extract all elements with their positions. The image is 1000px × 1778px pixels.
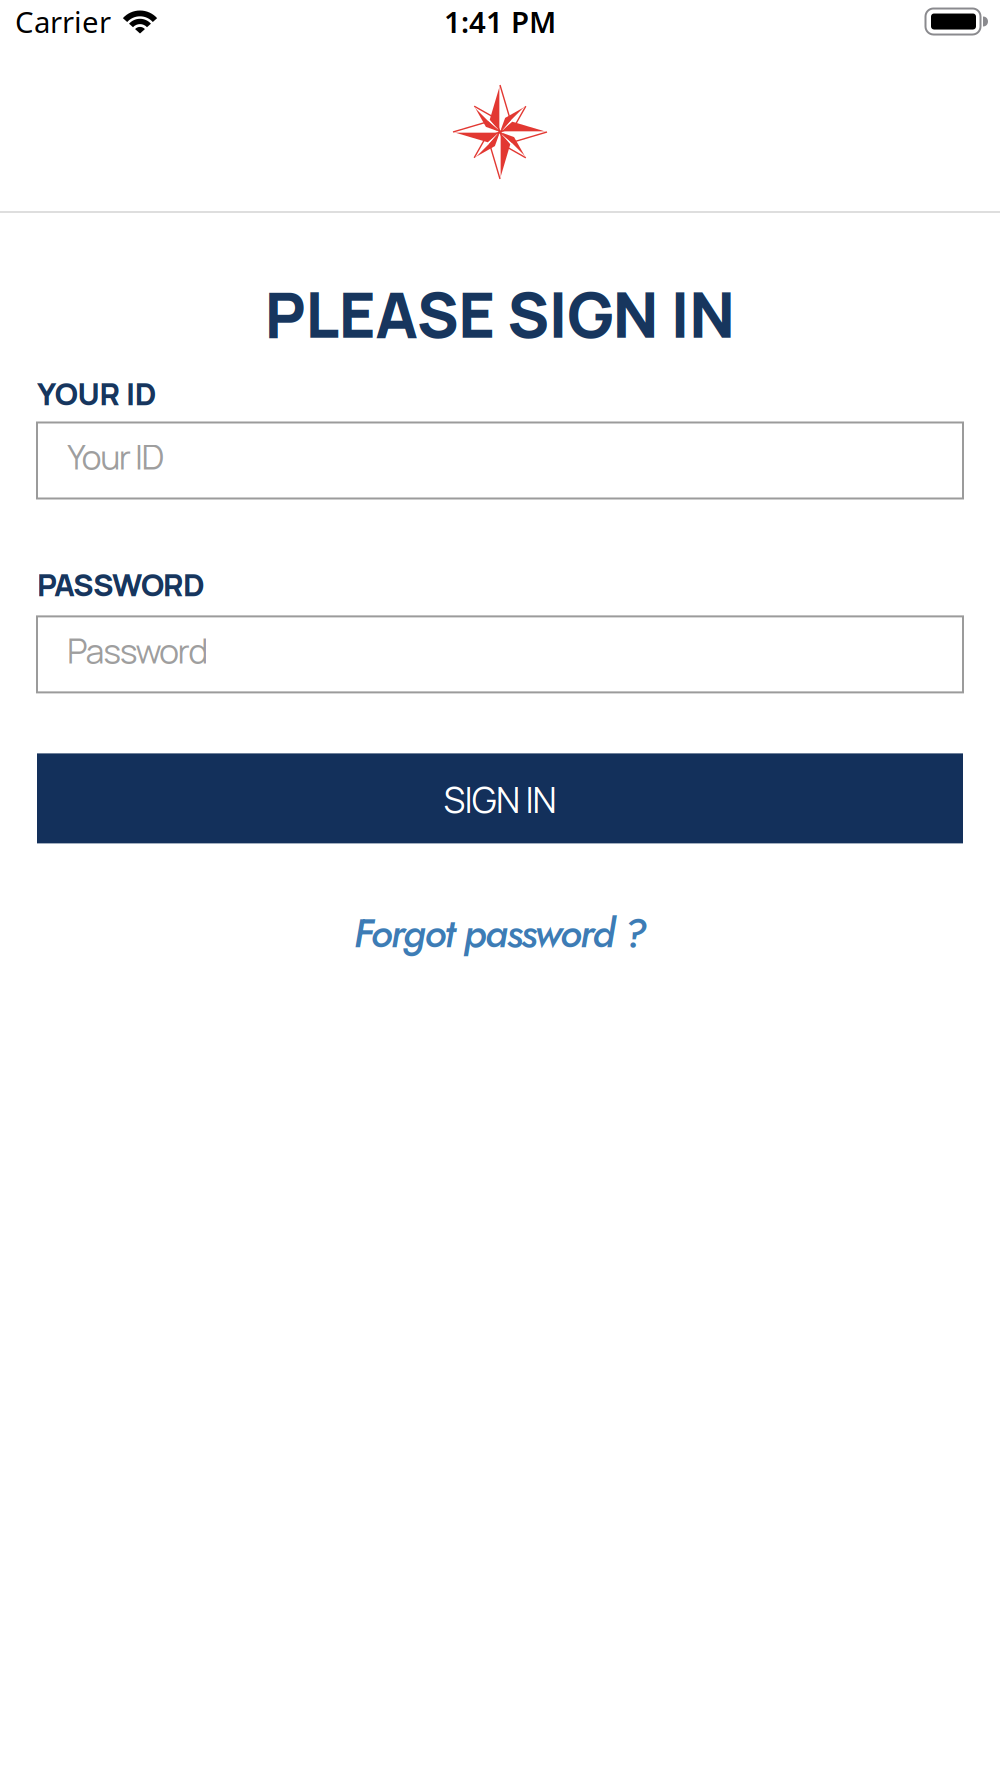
staticText: PLEASE SIGN IN <box>265 271 735 357</box>
button[interactable]: Password <box>37 616 963 692</box>
staticText: 1:41 PM <box>444 2 556 41</box>
button[interactable]: Forgot password ? <box>353 904 647 962</box>
staticText: PASSWORD <box>37 563 205 605</box>
staticText: YOUR ID <box>37 373 157 414</box>
button[interactable]: SIGN IN <box>37 753 963 843</box>
staticText: Forgot password ? <box>353 904 647 962</box>
staticText: Your ID <box>67 433 165 480</box>
staticText: Carrier <box>15 2 111 41</box>
staticText: Password <box>67 627 208 674</box>
staticText: SIGN IN <box>443 775 557 824</box>
button[interactable]: Your ID <box>37 422 963 498</box>
